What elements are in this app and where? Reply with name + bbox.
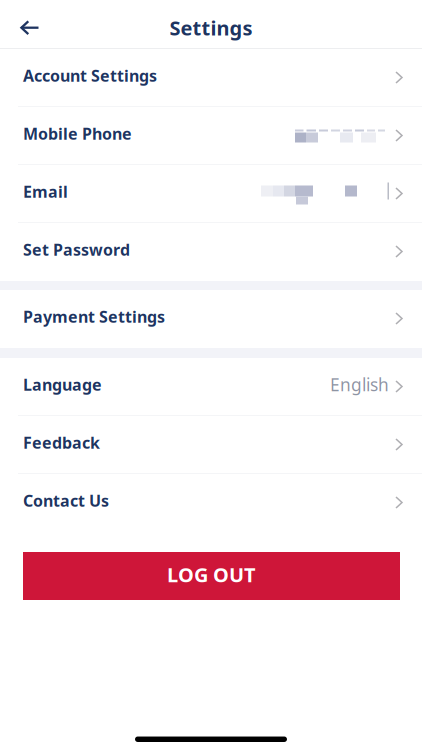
button[interactable]: Back (0, 0, 58, 47)
staticText: Mobile Phone (23, 123, 132, 144)
staticText: Payment Settings (23, 306, 165, 327)
staticText: Contact Us (23, 490, 109, 511)
button[interactable]: Mobile Phone (0, 107, 422, 165)
staticText: Account Settings (23, 65, 157, 86)
staticText: LOG OUT (167, 561, 256, 588)
button[interactable]: Feedback (0, 416, 422, 474)
staticText: Set Password (23, 239, 130, 260)
staticText: Email (23, 181, 68, 202)
staticText: Settings (169, 14, 252, 41)
button[interactable]: LOG OUT (23, 552, 400, 600)
button[interactable]: Contact Us (0, 474, 422, 532)
button[interactable]: Payment Settings (0, 290, 422, 348)
button[interactable]: Language (0, 358, 422, 416)
staticText: English (330, 373, 389, 396)
button[interactable]: Email (0, 165, 422, 223)
staticText: Language (23, 374, 102, 395)
staticText: Feedback (23, 432, 100, 453)
button[interactable]: Account Settings (0, 49, 422, 107)
button[interactable]: Set Password (0, 223, 422, 281)
